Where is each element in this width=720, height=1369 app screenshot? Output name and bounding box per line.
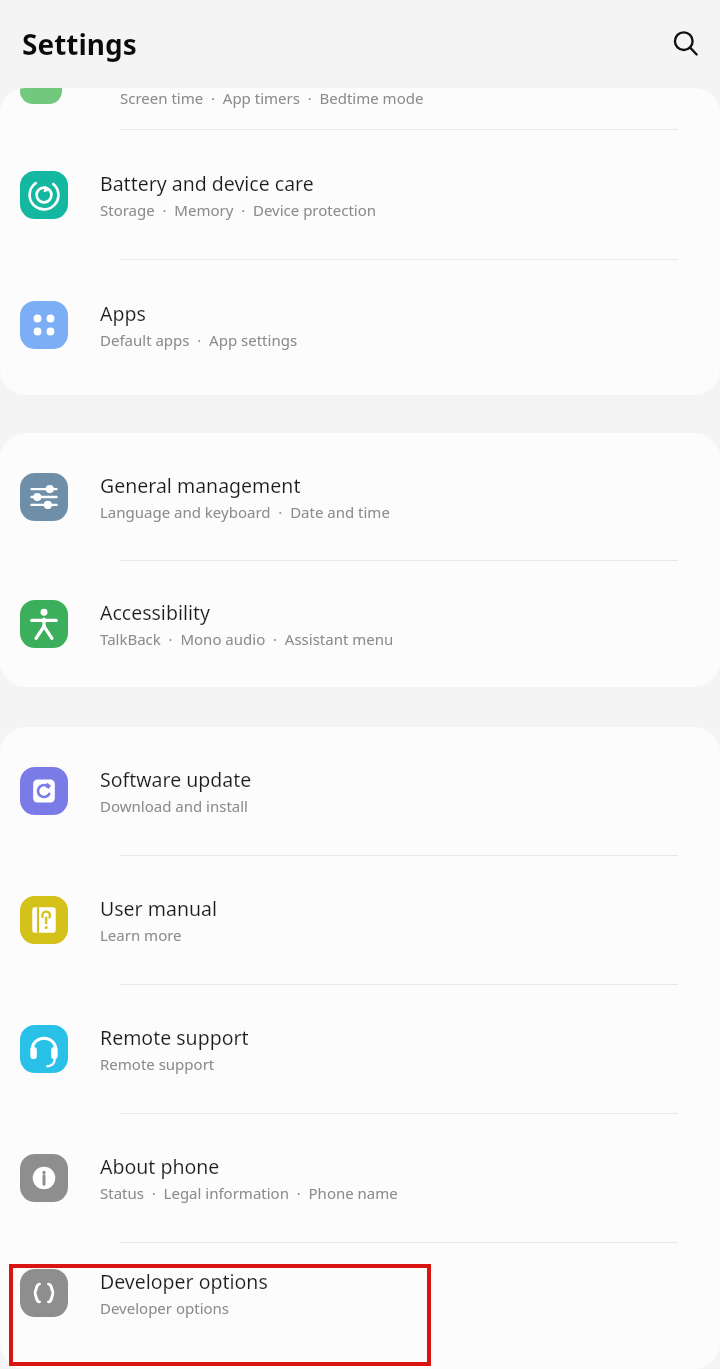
staticText: About phone <box>100 1153 220 1180</box>
staticText: Learn more <box>100 925 182 945</box>
button[interactable]: Developer options <box>0 1243 720 1343</box>
staticText: Remote support <box>100 1054 215 1074</box>
staticText: Language and keyboard · Date and time <box>100 502 390 522</box>
staticText: Status · Legal information · Phone name <box>100 1183 398 1203</box>
staticText: Screen time · App timers · Bedtime mode <box>120 88 424 108</box>
button[interactable]: Apps <box>0 260 720 390</box>
button[interactable]: Remote support <box>0 985 720 1113</box>
staticText: Developer options <box>100 1268 268 1295</box>
staticText: User manual <box>100 895 217 922</box>
button[interactable]: Search <box>662 20 710 68</box>
button[interactable]: About phone <box>0 1114 720 1242</box>
staticText: Remote support <box>100 1024 249 1051</box>
staticText: General management <box>100 472 301 499</box>
staticText: Settings <box>22 25 137 63</box>
staticText: Apps <box>100 300 146 327</box>
staticText: Developer options <box>100 1298 230 1318</box>
staticText: Default apps · App settings <box>100 330 298 350</box>
button[interactable]: Software update <box>0 727 720 855</box>
button[interactable]: General management <box>0 433 720 560</box>
button[interactable]: Accessibility <box>0 561 720 687</box>
staticText: TalkBack · Mono audio · Assistant menu <box>100 629 394 649</box>
staticText: Software update <box>100 766 252 793</box>
button[interactable]: Battery and device care <box>0 130 720 259</box>
button[interactable]: User manual <box>0 856 720 984</box>
staticText: Battery and device care <box>100 170 314 197</box>
staticText: Storage · Memory · Device protection <box>100 200 377 220</box>
staticText: Accessibility <box>100 599 210 626</box>
staticText: Download and install <box>100 796 248 816</box>
